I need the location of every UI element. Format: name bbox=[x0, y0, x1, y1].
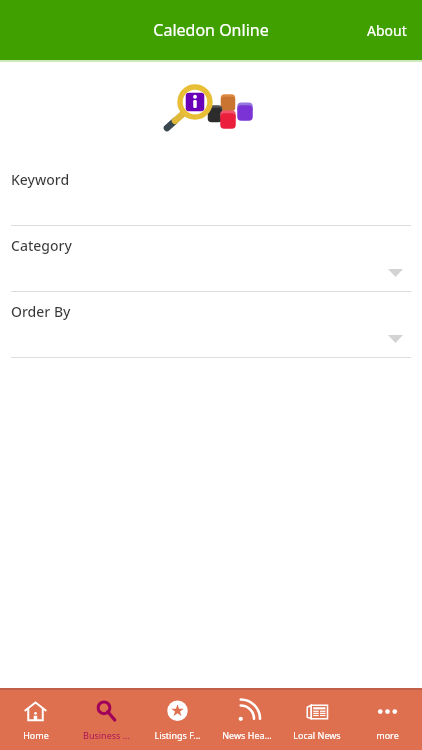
button[interactable]: Keyword bbox=[0, 160, 422, 226]
button[interactable]: News Hea... bbox=[212, 699, 282, 741]
staticText: Business ... bbox=[83, 729, 130, 741]
staticText: Keyword bbox=[11, 170, 70, 189]
staticText: more bbox=[376, 729, 399, 741]
button[interactable]: About bbox=[352, 9, 422, 52]
staticText: Order By bbox=[11, 302, 71, 321]
button[interactable]: Home bbox=[0, 699, 71, 741]
button[interactable]: Order By bbox=[0, 292, 422, 358]
button[interactable]: Business ... bbox=[71, 699, 142, 741]
staticText: Local News bbox=[293, 729, 341, 741]
button[interactable]: more bbox=[352, 699, 422, 741]
staticText: Caledon Online bbox=[153, 19, 269, 41]
button[interactable]: Category bbox=[0, 226, 422, 292]
staticText: Category bbox=[11, 236, 72, 255]
button[interactable]: Listings F... bbox=[142, 699, 212, 741]
staticText: News Hea... bbox=[222, 729, 272, 741]
staticText: About bbox=[367, 21, 407, 40]
staticText: Listings F... bbox=[154, 729, 201, 741]
button[interactable]: Local News bbox=[282, 699, 352, 741]
staticText: Home bbox=[23, 729, 49, 741]
